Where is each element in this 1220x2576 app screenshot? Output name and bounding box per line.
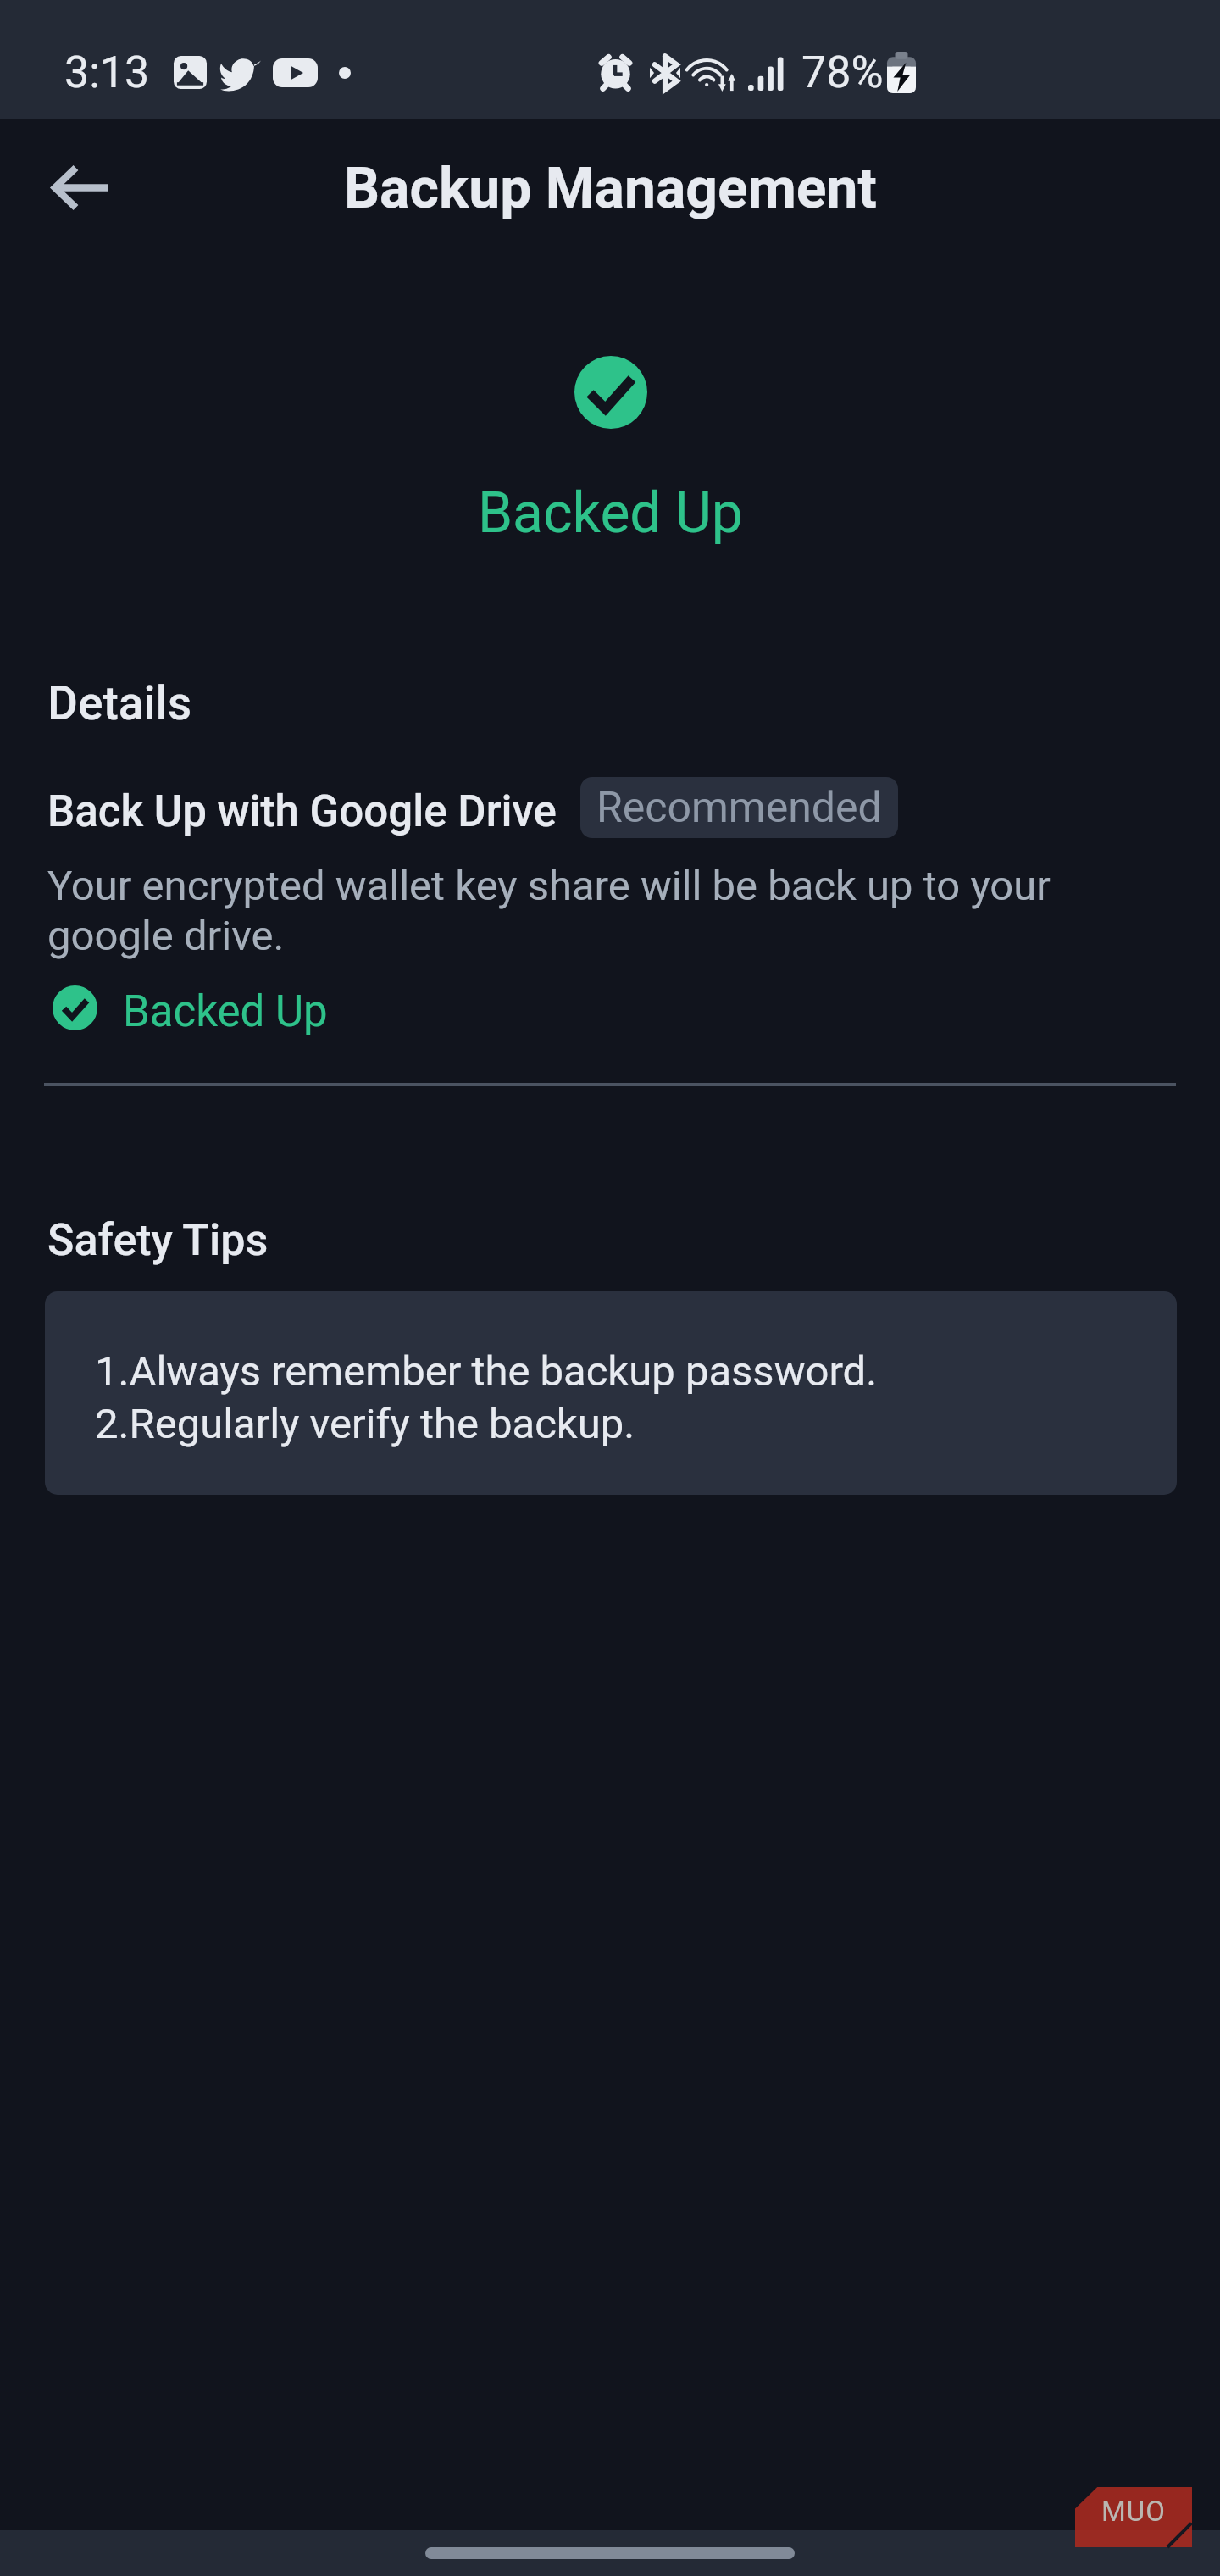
staticText: 78% — [801, 47, 884, 98]
staticText: Back Up with Google Drive — [47, 786, 557, 837]
staticText: MUO — [1101, 2495, 1166, 2528]
staticText: Recommended — [596, 783, 882, 833]
staticText: 1.Always remember the backup password. 2… — [95, 1347, 878, 1448]
staticText: Details — [47, 676, 192, 730]
staticText: Safety Tips — [47, 1214, 269, 1266]
button[interactable]: Recommended — [580, 777, 898, 838]
staticText: Backup Management — [344, 156, 877, 221]
staticText: Backed Up — [478, 480, 743, 546]
button[interactable]: Back — [27, 143, 135, 231]
staticText: 3:13 — [64, 47, 150, 98]
staticText: Backed Up — [123, 986, 328, 1037]
button[interactable]: Back Up with Google Drive — [44, 763, 1176, 1042]
staticText: Your encrypted wallet key share will be … — [47, 862, 1090, 960]
